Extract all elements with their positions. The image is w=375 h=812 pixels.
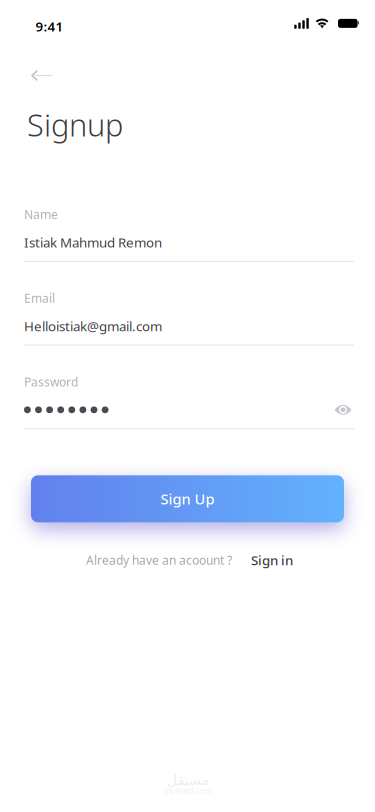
button[interactable]: Sign Up	[31, 475, 344, 522]
staticText: Helloistiak@gmail.com	[24, 317, 162, 335]
staticText: Name	[24, 206, 58, 222]
staticText: 9:41	[35, 17, 63, 35]
button[interactable]: Show password	[322, 400, 354, 419]
staticText: Sign Up	[160, 489, 214, 509]
staticText: Sign in	[251, 551, 293, 569]
staticText: Istiak Mahmud Remon	[24, 234, 162, 251]
staticText: مستقل	[166, 772, 209, 788]
staticText: Signup	[27, 104, 123, 145]
button[interactable]: Back	[0, 64, 67, 87]
staticText: Password	[24, 374, 78, 390]
button[interactable]: Sign in	[251, 551, 293, 569]
staticText: mostaql.com	[163, 786, 211, 796]
staticText: Email	[24, 290, 55, 306]
staticText: Already have an acoount ?	[86, 552, 232, 568]
